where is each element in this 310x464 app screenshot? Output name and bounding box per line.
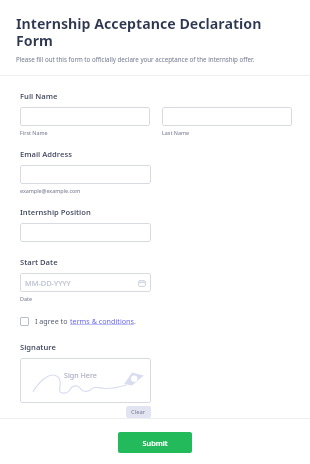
staticText: First Name xyxy=(20,129,48,136)
staticText: example@example.com xyxy=(20,187,81,194)
button[interactable]: Clear xyxy=(126,406,151,418)
staticText: I agree to xyxy=(35,316,70,326)
button[interactable] xyxy=(20,107,150,126)
staticText: Signature xyxy=(20,342,56,352)
staticText: Please fill out this form to officially … xyxy=(16,55,255,63)
button[interactable]: Signature pad xyxy=(20,358,151,403)
button[interactable]: Submit xyxy=(118,432,192,453)
staticText: Email Address xyxy=(20,149,72,159)
staticText: Internship Position xyxy=(20,207,91,217)
staticText: Sign Here xyxy=(64,370,97,380)
staticText: terms & conditions xyxy=(70,316,134,326)
button[interactable]: I agree to xyxy=(20,316,136,326)
staticText: Start Date xyxy=(20,257,58,267)
staticText: Submit xyxy=(142,438,168,448)
button[interactable] xyxy=(20,223,151,242)
staticText: Full Name xyxy=(20,91,58,101)
staticText: . xyxy=(134,316,136,326)
staticText: MM-DD-YYYY xyxy=(25,278,71,288)
button[interactable] xyxy=(162,107,292,126)
staticText: Clear xyxy=(131,408,146,416)
staticText: Internship Acceptance Declaration Form xyxy=(16,14,296,51)
button[interactable] xyxy=(20,165,151,184)
staticText: Date xyxy=(20,295,32,302)
staticText: Last Name xyxy=(162,129,189,136)
button[interactable]: MM-DD-YYYY xyxy=(20,273,151,292)
